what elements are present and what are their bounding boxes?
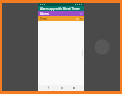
button[interactable]: Alarms bbox=[38, 11, 84, 16]
button[interactable]: Back bbox=[47, 86, 50, 89]
button[interactable]: Recent apps bbox=[72, 86, 75, 89]
other: Collapse bbox=[80, 18, 82, 20]
staticText: Timer bbox=[40, 17, 48, 21]
staticText: Alarm app with Silent Timer bbox=[40, 7, 80, 11]
button[interactable]: Timer bbox=[38, 16, 84, 21]
staticText: Alarms bbox=[40, 12, 49, 16]
button[interactable]: Home bbox=[60, 86, 63, 89]
